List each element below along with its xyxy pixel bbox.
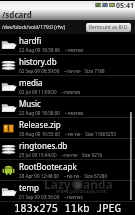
staticText: Remount as R/O xyxy=(89,24,128,31)
button[interactable]: temp xyxy=(0,181,135,202)
staticText: RootBooter.apk xyxy=(19,161,77,172)
staticText: 01 Sep 09 03:36:00 --rwxrwx xyxy=(19,194,83,200)
staticText: 183x275 11kb JPEG xyxy=(14,201,122,214)
button[interactable]: Release.zip xyxy=(0,118,135,139)
button[interactable]: ringtones.db xyxy=(0,139,135,160)
staticText: hardfi xyxy=(19,35,42,46)
staticText: history.db xyxy=(19,56,57,67)
button[interactable]: Remount as R/O xyxy=(86,23,131,32)
staticText: 22 Aug 09 18:58:00 --rwxrwx xyxy=(19,110,84,116)
button[interactable]: history.db xyxy=(0,55,135,76)
staticText: 05:41 xyxy=(116,1,134,9)
staticText: 25 Jul 09 15:44:00 --rw-rw- Size 9216 xyxy=(19,152,103,158)
staticText: Music xyxy=(19,98,41,109)
staticText: 02 Jul 09 11:09:00 --rwxrwx xyxy=(19,89,81,95)
button[interactable]: Music xyxy=(0,97,135,118)
staticText: 22 Aug 09 18:59:06 --rwxrwx xyxy=(19,47,84,53)
button[interactable]: media xyxy=(0,76,135,97)
staticText: ringtones.db xyxy=(19,140,68,151)
staticText: media xyxy=(19,77,43,88)
staticText: 28 Apr 09 12:48:00 --rw-rw- Size 67280 xyxy=(19,173,108,179)
staticText: www.pandaapp.com xyxy=(56,188,107,195)
staticText: 02 Sep 09 06:39:00 --rw-rw- Size 7168 xyxy=(19,68,105,74)
staticText: /dev/block/vold/179:0 (rfw) xyxy=(2,24,65,31)
staticText: temp xyxy=(19,182,39,193)
button[interactable]: hardfi xyxy=(0,34,135,55)
staticText: anda xyxy=(83,176,113,192)
button[interactable]: RootBooter.apk xyxy=(0,160,135,181)
staticText: Release.zip xyxy=(19,119,61,130)
staticText: 30 Aug 09 10:55:00 --rw-rw- Size 1186525… xyxy=(19,131,116,137)
staticText: Lazy xyxy=(44,176,71,192)
staticText: /sdcard xyxy=(2,9,32,20)
